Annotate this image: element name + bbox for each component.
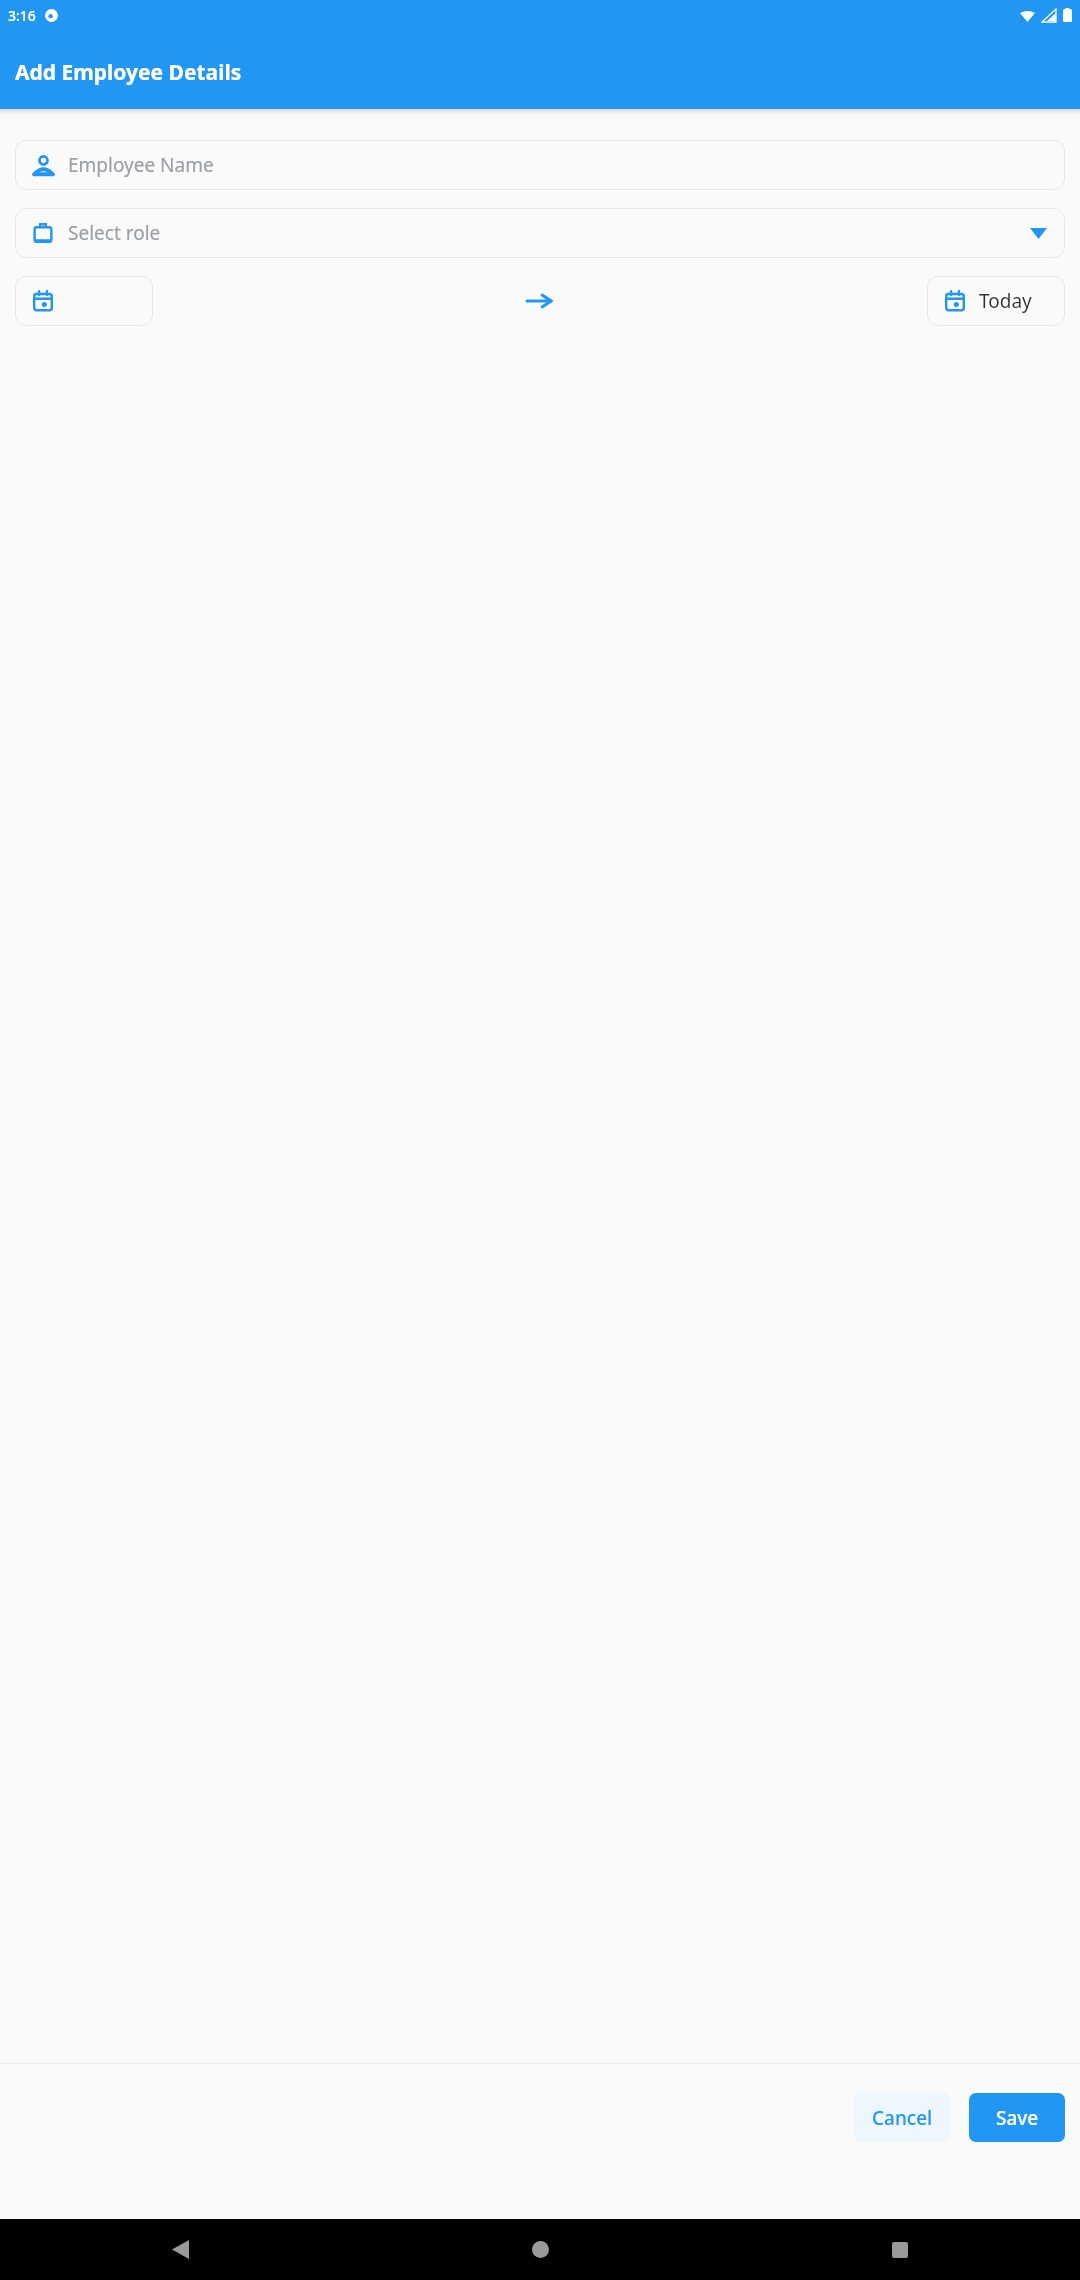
- staticText: Select role: [68, 220, 161, 246]
- staticText: Cancel: [872, 2105, 933, 2131]
- other: Open role dropdown: [1030, 228, 1047, 239]
- button[interactable]: Back: [0, 2219, 360, 2280]
- button[interactable]: Home: [360, 2219, 720, 2280]
- staticText: Today: [979, 288, 1032, 314]
- staticText: Employee Name: [68, 152, 214, 178]
- button[interactable]: Employee Name: [15, 140, 1065, 190]
- button[interactable]: Today: [927, 276, 1065, 326]
- button[interactable]: Save: [969, 2093, 1065, 2142]
- staticText: 3:16: [8, 6, 36, 25]
- staticText: Save: [996, 2105, 1039, 2131]
- staticText: Add Employee Details: [15, 58, 242, 87]
- button[interactable]: Select role: [15, 208, 1065, 258]
- button[interactable]: Cancel: [854, 2093, 951, 2142]
- button[interactable]: Pick start date: [15, 276, 153, 326]
- button[interactable]: Recent apps: [720, 2219, 1080, 2280]
